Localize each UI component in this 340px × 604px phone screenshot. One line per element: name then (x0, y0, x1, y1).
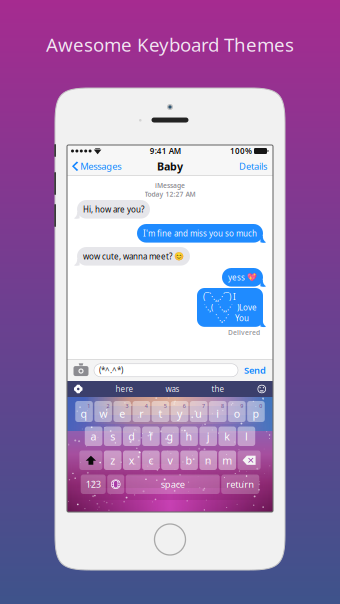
button[interactable]: wow cute, wanna meet? 😊 (67, 247, 273, 266)
button[interactable]: h (180, 426, 198, 446)
button[interactable]: Keyboard settings (73, 385, 83, 393)
staticText: j (207, 429, 210, 443)
staticText: e (119, 407, 125, 421)
staticText: h (186, 429, 193, 443)
staticText: k (224, 429, 230, 443)
button[interactable]: s (104, 426, 121, 446)
button[interactable]: 0 (247, 401, 265, 422)
button[interactable]: (¯`·.¸¸.·´¯) I `·.¸(¯`·.¸¸.·´¯)Love `·.¸… (67, 288, 273, 327)
button[interactable]: l (238, 426, 255, 446)
staticText: 1 (87, 402, 90, 410)
staticText: wow cute, wanna meet? 😊 (83, 251, 184, 262)
button[interactable]: 4 (133, 401, 150, 422)
staticText: i (216, 407, 219, 421)
staticText: 123 (86, 478, 101, 490)
button[interactable]: Emoji (256, 385, 267, 393)
staticText: b (186, 453, 193, 467)
staticText: return (226, 478, 254, 490)
staticText: 9 (240, 402, 243, 410)
button[interactable]: n (199, 450, 217, 470)
button[interactable]: 1 (75, 401, 93, 422)
button[interactable]: a (85, 426, 102, 446)
staticText: Today 12:27 AM (144, 190, 195, 199)
staticText: 4 (145, 402, 148, 410)
staticText: 0 (259, 402, 262, 410)
staticText: 8 (221, 402, 224, 410)
button[interactable]: g (161, 426, 179, 446)
button[interactable]: c (142, 450, 160, 470)
button[interactable]: was (165, 384, 179, 394)
button[interactable]: Delete (238, 450, 261, 470)
staticText: q (81, 407, 88, 421)
staticText: p (252, 407, 259, 421)
staticText: u (195, 407, 202, 421)
button[interactable]: z (104, 450, 121, 470)
button[interactable]: 9 (228, 401, 246, 422)
button[interactable]: j (199, 426, 217, 446)
staticText: iMessage (155, 181, 185, 190)
staticText: (*^.^*) (99, 365, 123, 375)
staticText: the (211, 384, 224, 394)
staticText: f (149, 429, 153, 443)
staticText: d (128, 429, 135, 443)
staticText: Messages (80, 160, 121, 172)
staticText: m (222, 453, 232, 467)
button[interactable]: here (115, 384, 133, 394)
button[interactable]: Shift (79, 450, 102, 470)
button[interactable]: 6 (171, 401, 188, 422)
staticText: was (165, 384, 179, 394)
staticText: 6 (183, 402, 186, 410)
staticText: yess 💖 (228, 272, 257, 283)
button[interactable]: 3 (113, 401, 131, 422)
staticText: (¯`·.¸¸.·´¯) I `·.¸(¯`·.¸¸.·´¯)Love `·.¸… (203, 291, 257, 323)
staticText: here (115, 384, 133, 394)
button[interactable]: Details (233, 157, 273, 175)
button[interactable]: k (218, 426, 236, 446)
button[interactable]: 5 (152, 401, 169, 422)
staticText: Send (244, 364, 266, 376)
staticText: 3 (126, 402, 129, 410)
button[interactable]: 8 (209, 401, 226, 422)
button[interactable]: Next keyboard (107, 474, 124, 494)
button[interactable]: Hi, how are you? (67, 200, 273, 219)
staticText: s (110, 429, 115, 443)
staticText: l (245, 429, 248, 443)
button[interactable]: return (221, 474, 259, 494)
staticText: 2 (106, 402, 109, 410)
button[interactable]: m (218, 450, 236, 470)
staticText: Awesome Keyboard Themes (46, 32, 294, 57)
button[interactable]: f (142, 426, 160, 446)
staticText: v (167, 453, 172, 467)
button[interactable]: the (211, 384, 224, 394)
staticText: n (205, 453, 212, 467)
button[interactable]: 2 (94, 401, 112, 422)
staticText: o (234, 407, 240, 421)
staticText: g (166, 429, 173, 443)
staticText: c (148, 453, 153, 467)
button[interactable]: yess 💖 (67, 268, 273, 287)
button[interactable]: d (123, 426, 141, 446)
staticText: Delivered (228, 328, 260, 337)
button[interactable]: I'm fine and miss you so much (67, 224, 273, 243)
staticText: a (91, 429, 97, 443)
staticText: w (99, 407, 107, 421)
staticText: Hi, how are you? (83, 204, 144, 215)
staticText: x (129, 453, 135, 467)
button[interactable]: b (180, 450, 198, 470)
button[interactable]: Take photo (73, 364, 89, 377)
button[interactable]: space (126, 474, 220, 494)
staticText: r (139, 407, 143, 421)
button[interactable]: 123 (81, 474, 106, 494)
staticText: z (110, 453, 115, 467)
button[interactable]: Messages (67, 157, 126, 175)
staticText: 7 (202, 402, 205, 410)
staticText: Details (239, 160, 267, 172)
button[interactable]: Send (243, 364, 267, 376)
button[interactable]: x (123, 450, 141, 470)
staticText: space (161, 478, 185, 490)
button[interactable]: 7 (190, 401, 207, 422)
button[interactable]: v (161, 450, 179, 470)
staticText: I'm fine and miss you so much (143, 228, 257, 239)
staticText: Baby (157, 159, 183, 173)
staticText: y (177, 407, 182, 421)
